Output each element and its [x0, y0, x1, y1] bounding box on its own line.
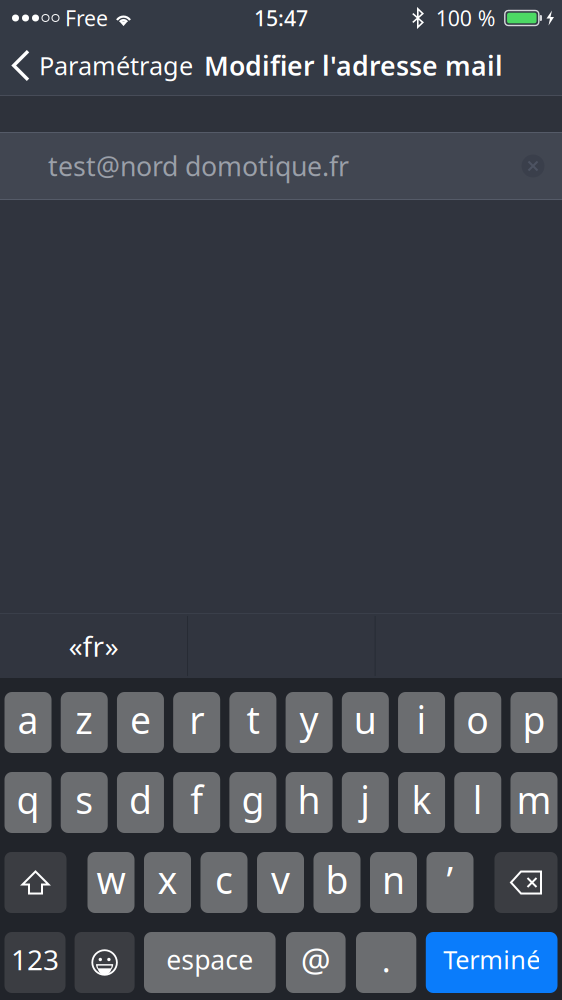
button[interactable]: g [229, 772, 276, 833]
staticText: x [157, 855, 177, 904]
staticText: k [412, 775, 432, 824]
button[interactable]: Majuscule [4, 852, 66, 913]
button[interactable]: a [4, 692, 51, 753]
button[interactable]: w [87, 852, 134, 913]
staticText: m [516, 775, 551, 824]
staticText: b [325, 855, 348, 904]
staticText: Free [65, 4, 108, 32]
staticText: h [298, 775, 321, 824]
button[interactable]: Terminé [426, 932, 557, 993]
staticText: t [246, 695, 259, 744]
staticText: «fr» [68, 627, 118, 665]
button[interactable]: x [144, 852, 191, 913]
button[interactable]: e [117, 692, 164, 753]
staticText: n [382, 855, 405, 904]
button[interactable]: ’ [426, 852, 473, 913]
button[interactable]: Emoji [75, 932, 135, 993]
staticText: Paramétrage [39, 49, 193, 82]
staticText: p [522, 695, 545, 744]
staticText: q [16, 775, 39, 824]
staticText: test@nord domotique.fr [48, 148, 349, 184]
button[interactable]: . [356, 932, 416, 993]
staticText: c [215, 855, 233, 904]
button[interactable]: n [370, 852, 417, 913]
staticText: g [241, 775, 264, 824]
button[interactable]: o [454, 692, 501, 753]
button[interactable]: Paramétrage [0, 41, 193, 90]
staticText: u [354, 695, 377, 744]
staticText: o [466, 695, 489, 744]
button[interactable]: j [342, 772, 389, 833]
staticText: 100 % [436, 4, 496, 32]
button[interactable]: z [61, 692, 108, 753]
staticText: Terminé [443, 943, 540, 976]
button[interactable]: t [229, 692, 276, 753]
staticText: j [360, 775, 370, 824]
staticText: f [190, 775, 203, 824]
button[interactable]: l [454, 772, 501, 833]
staticText: z [75, 695, 93, 744]
staticText: w [96, 855, 125, 904]
staticText: r [189, 695, 204, 744]
button[interactable]: p [510, 692, 557, 753]
staticText: espace [166, 942, 253, 977]
staticText: v [271, 855, 290, 904]
staticText: y [300, 695, 319, 744]
button[interactable]: espace [144, 932, 276, 993]
staticText: 15:47 [254, 4, 308, 32]
button[interactable]: «fr» [0, 614, 187, 678]
button[interactable]: q [4, 772, 51, 833]
staticText: @ [301, 937, 331, 982]
staticText: d [129, 775, 152, 824]
button[interactable]: s [61, 772, 108, 833]
button[interactable]: v [257, 852, 304, 913]
button[interactable]: y [286, 692, 333, 753]
button[interactable]: d [117, 772, 164, 833]
staticText: l [473, 775, 483, 824]
button[interactable]: c [200, 852, 247, 913]
staticText: Modifier l'adresse mail [204, 48, 503, 83]
button[interactable]: @ [286, 932, 346, 993]
staticText: ’ [446, 855, 453, 904]
staticText: i [417, 695, 427, 744]
button[interactable]: h [286, 772, 333, 833]
button[interactable]: u [342, 692, 389, 753]
button[interactable]: Effacer [518, 151, 548, 181]
button[interactable]: r [173, 692, 220, 753]
button[interactable]: m [510, 772, 557, 833]
staticText: a [17, 695, 38, 744]
button[interactable]: b [313, 852, 360, 913]
button[interactable]: k [398, 772, 445, 833]
staticText: e [130, 695, 151, 744]
button[interactable]: i [398, 692, 445, 753]
button[interactable]: f [173, 772, 220, 833]
button[interactable]: Supprimer [494, 852, 557, 913]
button[interactable]: 123 [4, 932, 65, 993]
staticText: 123 [11, 941, 59, 978]
staticText: s [75, 775, 93, 824]
staticText: . [382, 937, 391, 982]
